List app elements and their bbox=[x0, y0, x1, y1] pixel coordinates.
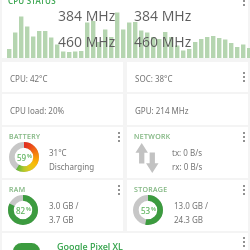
staticText: Google Pixel XL bbox=[57, 240, 123, 250]
button[interactable]: More options bbox=[237, 129, 250, 145]
staticText: CPU: 42°C bbox=[10, 73, 48, 84]
staticText: RAM bbox=[9, 185, 26, 195]
button[interactable]: More options bbox=[237, 234, 250, 250]
button[interactable]: GPU: 214 MHz bbox=[127, 94, 248, 125]
staticText: NETWORK bbox=[134, 132, 171, 142]
button[interactable]: NETWORK bbox=[127, 127, 248, 178]
staticText: 24.3 GB bbox=[174, 214, 203, 225]
button[interactable]: CPU STATUS bbox=[2, 0, 248, 58]
staticText: Discharging bbox=[49, 161, 95, 172]
staticText: 3.0 GB / bbox=[49, 200, 79, 211]
staticText: BATTERY bbox=[9, 132, 41, 142]
button[interactable]: More options bbox=[237, 182, 250, 198]
staticText: GPU: 214 MHz bbox=[135, 105, 189, 116]
staticText: rx: 0 B/s bbox=[172, 161, 203, 172]
button[interactable]: CPU: 42°C bbox=[2, 62, 123, 92]
other: Network transfer bbox=[135, 143, 159, 173]
staticText: % bbox=[27, 152, 32, 160]
button[interactable]: More options bbox=[237, 0, 250, 9]
button[interactable]: More options bbox=[112, 129, 126, 145]
button[interactable]: CPU load: 20% bbox=[2, 94, 123, 125]
button[interactable]: BATTERY bbox=[2, 127, 123, 178]
staticText: CPU load: 20% bbox=[10, 105, 65, 116]
staticText: SOC: 38°C bbox=[135, 73, 173, 84]
button[interactable]: STORAGE bbox=[127, 180, 248, 231]
staticText: 59 bbox=[17, 152, 27, 163]
button[interactable]: More options bbox=[237, 69, 250, 85]
button[interactable]: RAM bbox=[2, 180, 123, 231]
staticText: 460 MHz bbox=[134, 32, 192, 51]
button[interactable]: SOC: 38°C bbox=[127, 62, 248, 92]
button[interactable]: Google Pixel XL bbox=[2, 233, 248, 250]
staticText: CPU STATUS bbox=[8, 0, 56, 6]
staticText: STORAGE bbox=[134, 185, 168, 195]
staticText: 384 MHz bbox=[58, 6, 116, 25]
staticText: 13.0 GB / bbox=[174, 200, 209, 211]
button[interactable]: More options bbox=[112, 182, 126, 198]
staticText: 460 MHz bbox=[58, 32, 116, 51]
staticText: 31°C bbox=[49, 147, 67, 158]
staticText: % bbox=[151, 205, 156, 213]
staticText: 384 MHz bbox=[134, 6, 192, 25]
staticText: tx: 0 B/s bbox=[172, 147, 203, 158]
staticText: 82 bbox=[16, 205, 26, 216]
staticText: 3.7 GB bbox=[49, 214, 74, 225]
staticText: 53 bbox=[141, 205, 151, 216]
staticText: % bbox=[26, 205, 31, 213]
